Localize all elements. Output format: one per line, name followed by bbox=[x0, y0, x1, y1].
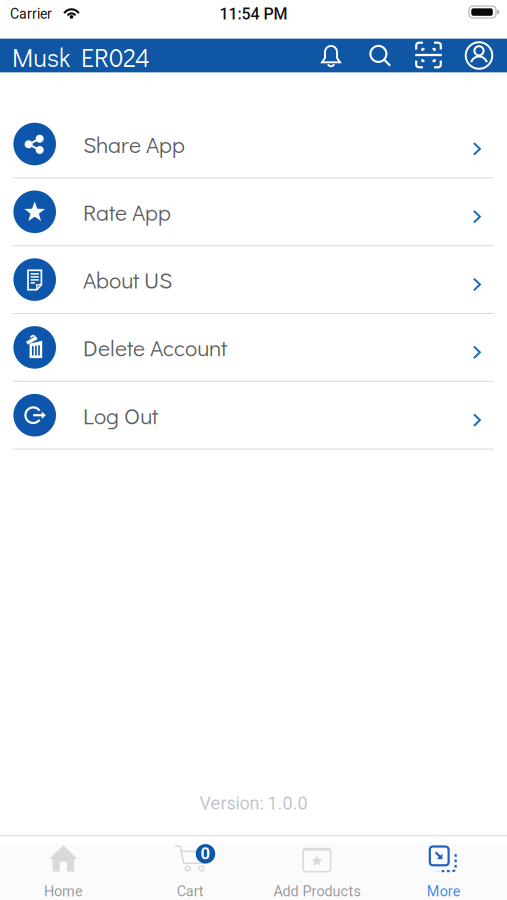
button[interactable]: Notifications bbox=[317, 41, 345, 69]
staticText: 11:54 PM bbox=[219, 5, 287, 23]
button[interactable]: Cart bbox=[127, 836, 254, 900]
staticText: Musk ER024 bbox=[12, 40, 150, 74]
staticText: Add Products bbox=[273, 883, 360, 900]
staticText: Carrier bbox=[10, 6, 52, 22]
staticText: Home bbox=[44, 883, 83, 900]
staticText: 0 bbox=[200, 844, 210, 863]
staticText: Version: 1.0.0 bbox=[199, 793, 307, 814]
button[interactable]: Search bbox=[366, 41, 394, 69]
button[interactable]: Home bbox=[0, 836, 127, 900]
button[interactable]: Add Products bbox=[253, 836, 380, 900]
staticText: About US bbox=[83, 265, 172, 295]
button[interactable]: Rate App bbox=[0, 178, 507, 246]
button[interactable]: Delete Account bbox=[0, 314, 507, 382]
button[interactable]: About US bbox=[0, 246, 507, 314]
button[interactable]: More bbox=[380, 836, 507, 900]
button[interactable]: Scan bbox=[415, 41, 443, 69]
button[interactable]: Profile bbox=[464, 40, 494, 70]
staticText: Cart bbox=[177, 883, 204, 900]
button[interactable]: Log Out bbox=[0, 382, 507, 450]
staticText: Delete Account bbox=[83, 332, 227, 362]
staticText: Rate App bbox=[83, 197, 171, 227]
staticText: Share App bbox=[83, 129, 185, 159]
staticText: More bbox=[427, 883, 461, 900]
button[interactable]: Share App bbox=[0, 111, 507, 178]
staticText: Log Out bbox=[83, 400, 158, 430]
